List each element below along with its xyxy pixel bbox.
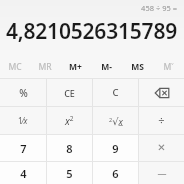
staticText: x2: [65, 114, 74, 128]
button[interactable]: 1⁄x: [0, 107, 46, 134]
button[interactable]: x2: [47, 107, 92, 134]
staticText: 4: [20, 166, 27, 181]
button[interactable]: M+: [60, 55, 91, 78]
button[interactable]: MC: [0, 55, 30, 78]
staticText: 5: [66, 166, 73, 181]
button[interactable]: MR: [30, 55, 60, 78]
button[interactable]: ✕: [139, 135, 184, 161]
button[interactable]: Backspace: [139, 79, 184, 106]
button[interactable]: 9: [93, 135, 138, 161]
button[interactable]: M˅: [153, 55, 184, 78]
staticText: 458 ÷ 95 =: [0, 3, 177, 13]
button[interactable]: CE: [47, 79, 92, 106]
staticText: 7: [20, 141, 27, 156]
staticText: ÷: [158, 113, 165, 128]
staticText: M+: [69, 61, 82, 73]
button[interactable]: C: [93, 79, 138, 106]
staticText: MR: [38, 61, 52, 73]
staticText: 8: [66, 141, 73, 156]
staticText: 9: [112, 141, 119, 156]
staticText: CE: [64, 87, 75, 99]
staticText: M˅: [163, 61, 174, 73]
button[interactable]: ÷: [139, 107, 184, 134]
staticText: C: [112, 86, 119, 99]
staticText: 2√x: [109, 115, 123, 127]
button[interactable]: 8: [47, 135, 92, 161]
staticText: 6: [112, 166, 119, 181]
button[interactable]: MS: [122, 55, 153, 78]
staticText: MC: [8, 61, 22, 73]
button[interactable]: %: [0, 79, 46, 106]
button[interactable]: 6: [93, 162, 138, 184]
staticText: 4,821052631578947: [4, 17, 179, 46]
staticText: —: [157, 167, 167, 179]
button[interactable]: 458 ÷ 95 =: [0, 0, 184, 55]
staticText: 1⁄x: [18, 115, 28, 126]
staticText: MS: [131, 61, 144, 73]
button[interactable]: 2√x: [93, 107, 138, 134]
staticText: ✕: [157, 142, 166, 154]
button[interactable]: M-: [91, 55, 122, 78]
button[interactable]: 5: [47, 162, 92, 184]
staticText: %: [19, 86, 28, 100]
staticText: M-: [101, 61, 112, 73]
button[interactable]: —: [139, 162, 184, 184]
button[interactable]: 7: [0, 135, 46, 161]
button[interactable]: 4: [0, 162, 46, 184]
